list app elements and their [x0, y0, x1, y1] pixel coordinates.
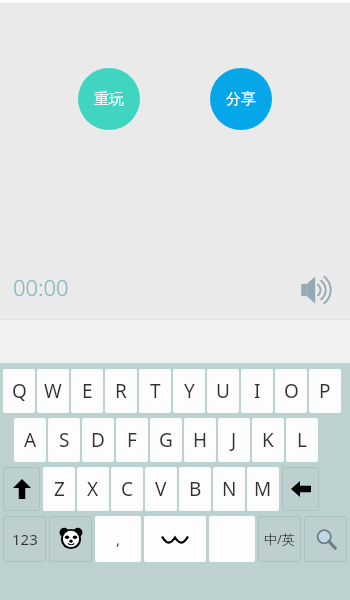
staticText: P	[319, 378, 331, 404]
button[interactable]: Shift	[3, 467, 40, 511]
button[interactable]: E	[71, 369, 103, 413]
staticText: X	[87, 476, 99, 502]
button[interactable]: A	[14, 418, 46, 462]
button[interactable]: N	[213, 467, 245, 511]
button[interactable]: J	[218, 418, 250, 462]
staticText: O	[284, 378, 299, 404]
staticText: I	[254, 378, 261, 404]
button[interactable]: V	[145, 467, 177, 511]
button[interactable]: Search	[304, 516, 347, 562]
staticText: D	[91, 427, 105, 453]
button[interactable]: M	[247, 467, 279, 511]
staticText: 中/英	[264, 530, 295, 548]
staticText: J	[231, 427, 237, 453]
button[interactable]: Emoji	[49, 516, 92, 562]
staticText: B	[189, 476, 202, 502]
button[interactable]: D	[82, 418, 114, 462]
button[interactable]: C	[111, 467, 143, 511]
button[interactable]: Backspace	[282, 467, 319, 511]
staticText: E	[82, 378, 93, 404]
staticText: 重玩	[94, 90, 124, 109]
button[interactable]: X	[77, 467, 109, 511]
staticText: K	[262, 427, 274, 453]
button[interactable]: Space	[144, 516, 206, 562]
button[interactable]: U	[207, 369, 239, 413]
button[interactable]: T	[139, 369, 171, 413]
staticText: Y	[184, 378, 195, 404]
staticText: H	[193, 427, 208, 453]
button[interactable]: O	[275, 369, 307, 413]
button[interactable]: 中/英	[258, 516, 301, 562]
staticText: R	[115, 378, 127, 404]
button[interactable]: L	[286, 418, 318, 462]
staticText: A	[24, 427, 37, 453]
button[interactable]: Q	[3, 369, 35, 413]
button[interactable]: H	[184, 418, 216, 462]
staticText: W	[44, 378, 62, 404]
staticText: U	[216, 378, 230, 404]
button[interactable]: 分享	[210, 68, 272, 130]
staticText: ,	[116, 529, 121, 549]
staticText: V	[155, 476, 167, 502]
button[interactable]: F	[116, 418, 148, 462]
button[interactable]: S	[48, 418, 80, 462]
staticText: 123	[12, 529, 38, 549]
staticText: T	[150, 378, 161, 404]
staticText: N	[222, 476, 237, 502]
button[interactable]: R	[105, 369, 137, 413]
button[interactable]: G	[150, 418, 182, 462]
staticText: 分享	[226, 90, 256, 109]
staticText: S	[59, 427, 70, 453]
button[interactable]: Volume	[300, 273, 342, 307]
button[interactable]: Z	[43, 467, 75, 511]
staticText: 00:00	[13, 272, 69, 302]
staticText: Z	[54, 476, 65, 502]
staticText: F	[127, 427, 137, 453]
staticText: Q	[12, 378, 27, 404]
staticText: L	[297, 427, 307, 453]
button[interactable]: K	[252, 418, 284, 462]
staticText: G	[159, 427, 173, 453]
button[interactable]: Y	[173, 369, 205, 413]
button[interactable]: W	[37, 369, 69, 413]
staticText: M	[254, 476, 272, 502]
button[interactable]: I	[241, 369, 273, 413]
staticText: C	[121, 476, 134, 502]
button[interactable]: 123	[3, 516, 46, 562]
button[interactable]: B	[179, 467, 211, 511]
button[interactable]: P	[309, 369, 341, 413]
button[interactable]: 重玩	[78, 68, 140, 130]
button[interactable]: Comma	[95, 516, 141, 562]
